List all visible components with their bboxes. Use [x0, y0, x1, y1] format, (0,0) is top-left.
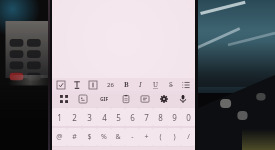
button[interactable]: Strikethrough [164, 79, 177, 91]
button[interactable]: 9 [167, 108, 181, 126]
button[interactable]: % [97, 128, 111, 146]
button[interactable]: Text box [86, 79, 100, 91]
staticText: 2 [72, 112, 77, 123]
button[interactable]: Keyboard modes [57, 93, 71, 105]
staticText: ) [173, 132, 176, 142]
staticText: 6 [130, 112, 135, 123]
button[interactable]: Bold [120, 79, 133, 91]
button[interactable]: 26 [102, 79, 118, 91]
staticText: 9 [172, 112, 177, 123]
button[interactable]: 5 [111, 108, 125, 126]
staticText: 7 [144, 112, 149, 123]
button[interactable]: - [125, 128, 139, 146]
button[interactable]: ( [153, 128, 167, 146]
staticText: B [124, 80, 129, 90]
button[interactable]: 0 [181, 108, 195, 126]
button[interactable]: GIF [95, 92, 113, 106]
staticText: # [72, 132, 77, 142]
staticText: ( [159, 132, 162, 142]
staticText: - [131, 132, 134, 142]
staticText: % [101, 132, 107, 142]
staticText: & [115, 132, 121, 142]
staticText: U [153, 80, 159, 90]
button[interactable]: @ [52, 128, 67, 146]
button[interactable]: 1 [52, 108, 67, 126]
button[interactable]: 3 [82, 108, 97, 126]
staticText: / [187, 132, 190, 142]
staticText: 26 [107, 81, 114, 89]
staticText: 8 [158, 112, 163, 123]
button[interactable]: Clipboard [119, 93, 133, 105]
staticText: 1 [57, 112, 62, 123]
staticText: + [144, 132, 149, 142]
button[interactable]: More [179, 79, 193, 91]
button[interactable]: 8 [153, 108, 167, 126]
button[interactable]: ) [167, 128, 181, 146]
button[interactable]: 7 [139, 108, 153, 126]
button[interactable]: Italic [134, 79, 147, 91]
button[interactable]: # [67, 128, 82, 146]
button[interactable]: Align [70, 79, 84, 91]
button[interactable]: Stickers [76, 93, 90, 105]
staticText: 0 [186, 112, 191, 123]
button[interactable]: Voice input [176, 93, 190, 105]
staticText: 5 [116, 112, 121, 123]
button[interactable]: 6 [125, 108, 139, 126]
button[interactable]: $ [82, 128, 97, 146]
button[interactable]: Text style [54, 79, 68, 91]
staticText: I [139, 80, 142, 90]
staticText: GIF [100, 96, 109, 103]
button[interactable]: Translate [138, 93, 152, 105]
button[interactable]: 4 [97, 108, 111, 126]
button[interactable]: Settings [157, 93, 171, 105]
staticText: $ [87, 132, 92, 142]
button[interactable]: & [111, 128, 125, 146]
button[interactable]: + [139, 128, 153, 146]
staticText: S [169, 80, 173, 90]
button[interactable]: Underline [149, 79, 162, 91]
button[interactable]: / [181, 128, 195, 146]
staticText: 4 [102, 112, 107, 123]
staticText: 3 [87, 112, 92, 123]
button[interactable]: 2 [67, 108, 82, 126]
staticText: @ [56, 132, 63, 142]
